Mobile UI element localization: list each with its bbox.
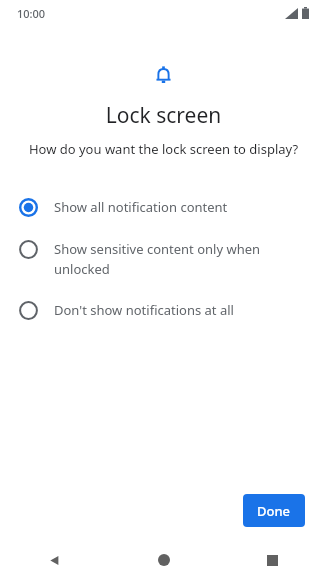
button[interactable]: Show all notification content: [0, 186, 327, 228]
staticText: Lock screen: [0, 101, 327, 130]
button[interactable]: Back: [0, 538, 109, 582]
button[interactable]: Show sensitive content only when unlocke…: [0, 228, 327, 289]
staticText: Show all notification content: [54, 198, 228, 216]
button[interactable]: Home: [109, 538, 218, 582]
button[interactable]: Don't show notifications at all: [0, 289, 327, 331]
button[interactable]: Done: [243, 494, 305, 527]
staticText: Show sensitive content only when unlocke…: [54, 240, 305, 278]
staticText: Don't show notifications at all: [54, 301, 234, 319]
staticText: Done: [257, 502, 291, 520]
staticText: 10:00: [17, 6, 46, 21]
button[interactable]: Recent apps: [218, 538, 327, 582]
staticText: How do you want the lock screen to displ…: [14, 140, 313, 158]
